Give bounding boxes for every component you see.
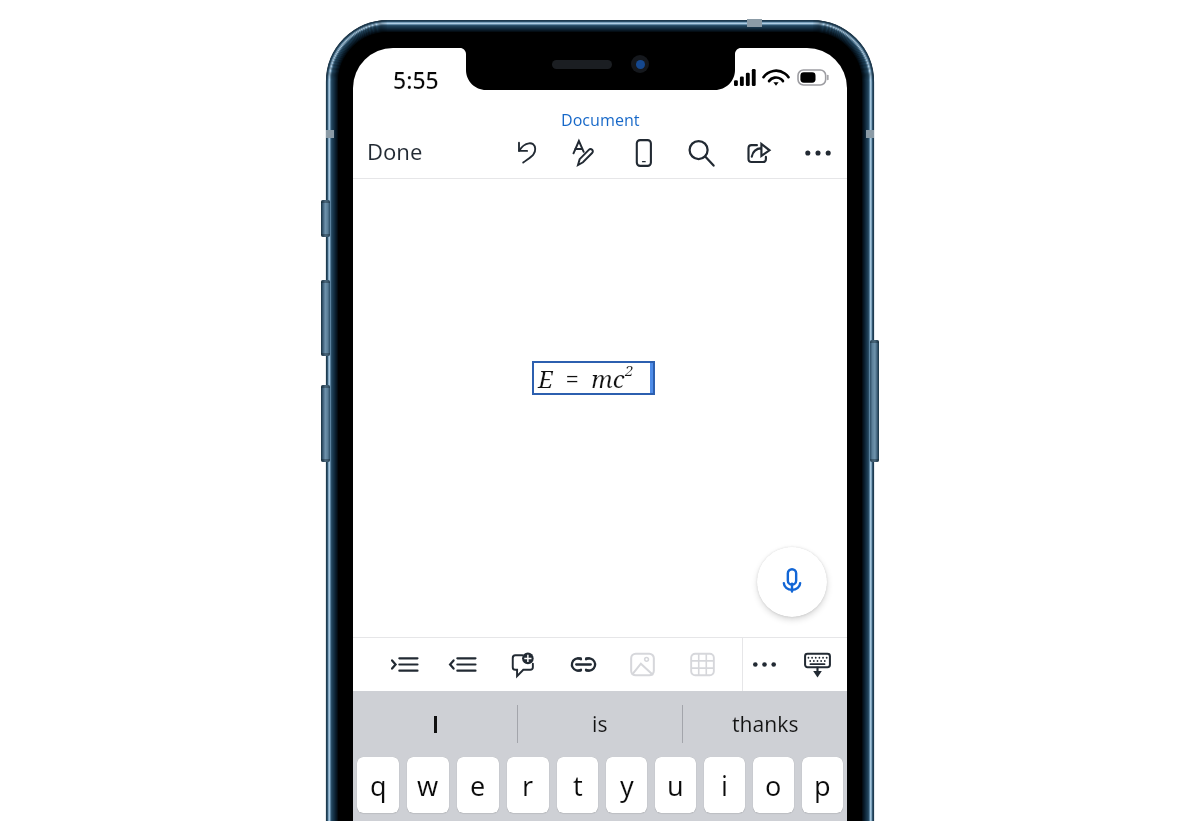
staticText: E = mc	[538, 362, 625, 395]
button[interactable]: More	[739, 639, 789, 689]
button[interactable]: r	[507, 757, 549, 813]
button[interactable]: q	[357, 757, 399, 813]
button[interactable]: Search	[675, 128, 727, 178]
staticText: Document	[561, 109, 640, 131]
button[interactable]: e	[457, 757, 499, 813]
button[interactable]: y	[606, 757, 647, 813]
staticText: Done	[367, 136, 423, 166]
button[interactable]: Done	[357, 128, 433, 174]
button[interactable]: u	[655, 757, 696, 813]
button[interactable]: i	[704, 757, 745, 813]
staticText: 2	[625, 360, 634, 380]
button[interactable]: is	[518, 691, 682, 757]
staticText: thanks	[732, 710, 799, 739]
staticText: t	[573, 767, 583, 804]
button[interactable]	[353, 691, 517, 757]
button[interactable]: t	[557, 757, 598, 813]
staticText: q	[370, 767, 387, 804]
staticText: w	[417, 767, 439, 804]
staticText: y	[620, 767, 634, 804]
button[interactable]: Share	[733, 128, 785, 178]
button[interactable]: w	[407, 757, 449, 813]
button[interactable]: Insert image	[617, 639, 667, 689]
staticText: u	[667, 767, 684, 804]
button[interactable]: o	[753, 757, 794, 813]
button[interactable]: Insert link	[558, 639, 608, 689]
button[interactable]: Add comment	[499, 639, 549, 689]
button[interactable]: Insert table	[677, 639, 727, 689]
staticText: is	[592, 710, 608, 739]
button[interactable]: Format text	[558, 128, 610, 178]
staticText: 5:55	[393, 64, 439, 95]
staticText: o	[765, 767, 782, 804]
button[interactable]: Mobile view	[618, 128, 670, 178]
button[interactable]: Hide keyboard	[792, 639, 842, 689]
staticText: e	[470, 767, 486, 804]
button[interactable]: Undo	[502, 128, 554, 178]
staticText: i	[721, 767, 728, 804]
button[interactable]: Outdent	[437, 639, 487, 689]
button[interactable]: Indent	[379, 639, 429, 689]
button[interactable]: More options	[792, 128, 844, 178]
button[interactable]: Dictate	[757, 547, 827, 617]
button[interactable]: p	[802, 757, 843, 813]
staticText: r	[522, 767, 534, 804]
button[interactable]: thanks	[683, 691, 847, 757]
staticText: p	[814, 767, 831, 804]
